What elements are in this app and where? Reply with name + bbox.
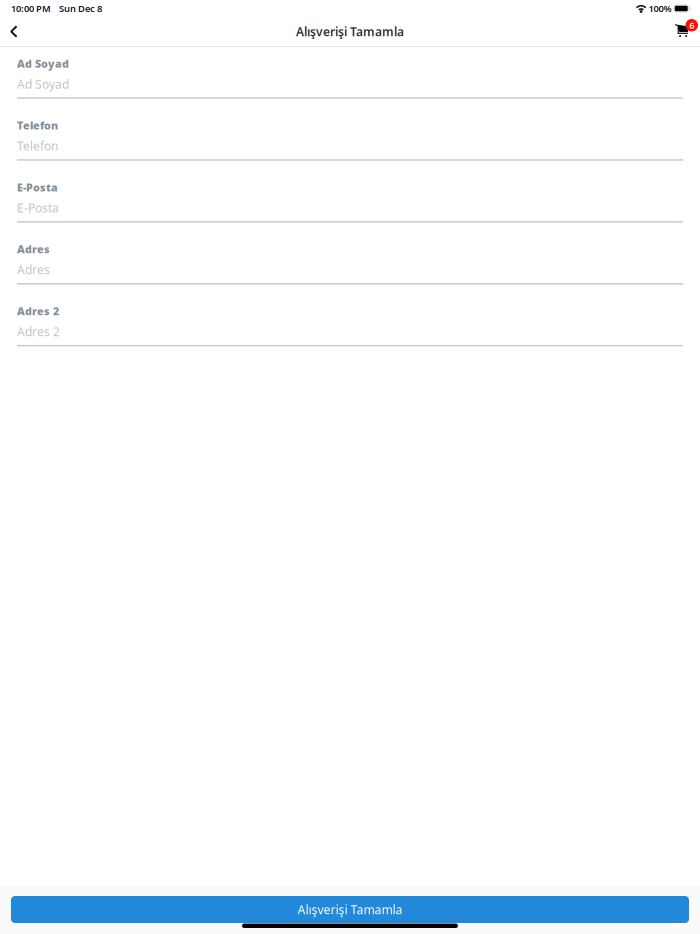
button[interactable]: Telefon [17,120,683,161]
button[interactable]: Adres [17,244,683,284]
staticText: Adres [17,242,50,256]
staticText: Adres 2 [17,304,59,318]
staticText: Adres [17,262,50,278]
button[interactable]: Cart, 6 items [673,19,698,44]
button[interactable]: Alışverişi Tamamla [11,896,689,923]
staticText: 100% [648,2,671,15]
staticText: Adres 2 [17,324,60,339]
staticText: Alışverişi Tamamla [296,23,404,39]
staticText: Ad Soyad [17,76,69,92]
staticText: Alışverişi Tamamla [297,901,402,917]
staticText: 6 [689,19,694,31]
button[interactable]: E-Posta [17,182,683,223]
staticText: E-Posta [17,180,58,194]
staticText: Sun Dec 8 [59,2,102,15]
button[interactable]: Adres 2 [17,306,683,346]
staticText: Telefon [17,138,58,154]
button[interactable]: Back [0,18,25,44]
staticText: 10:00 PM [11,2,51,15]
button[interactable]: Ad Soyad [17,58,683,99]
staticText: Telefon [17,118,58,132]
staticText: E-Posta [17,200,59,216]
staticText: Ad Soyad [17,56,69,71]
